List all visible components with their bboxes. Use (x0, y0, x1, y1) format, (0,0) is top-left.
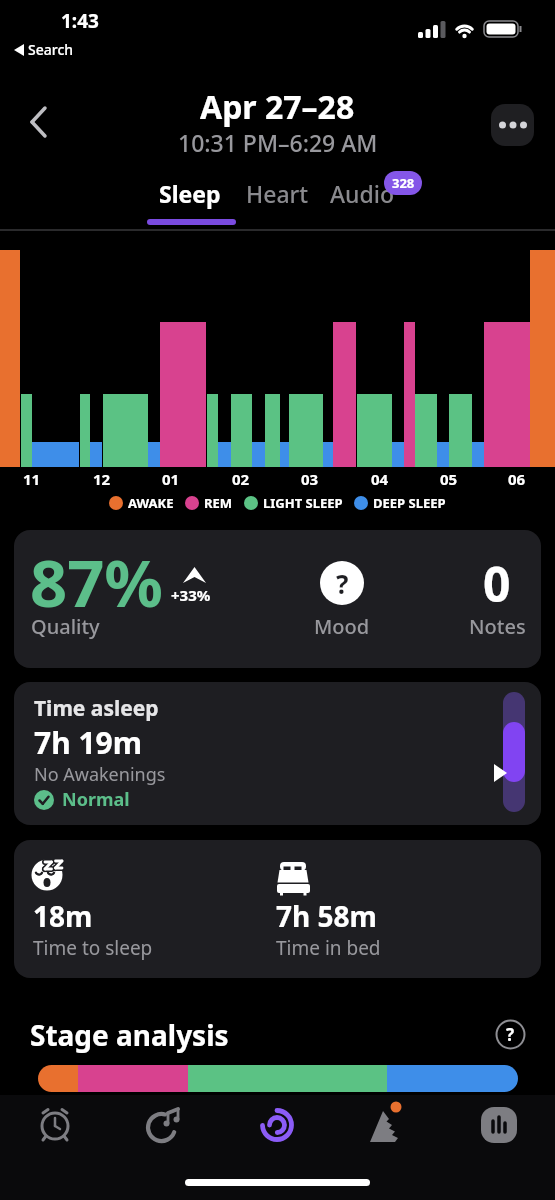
staticText: 06 (508, 469, 526, 489)
staticText: Normal (62, 787, 130, 812)
staticText: Time in bed (276, 935, 381, 961)
staticText: 04 (371, 469, 389, 489)
button[interactable] (16, 100, 60, 144)
button[interactable]: Audio (330, 178, 395, 209)
staticText: Time to sleep (33, 935, 153, 961)
staticText: No Awakenings (34, 762, 166, 787)
button[interactable] (366, 1103, 410, 1147)
button[interactable]: ? (320, 561, 364, 605)
button[interactable] (491, 104, 534, 146)
button[interactable]: Time asleep (14, 682, 541, 825)
button[interactable]: Sleep (159, 178, 221, 209)
staticText: Mood (314, 613, 370, 640)
staticText: 12 (93, 469, 111, 489)
staticText: Quality (31, 613, 100, 640)
staticText: 02 (232, 469, 250, 489)
staticText: 03 (301, 469, 319, 489)
button[interactable] (255, 1103, 299, 1147)
button[interactable] (477, 1103, 521, 1147)
staticText: REM (204, 494, 233, 512)
staticText: ? (506, 1023, 515, 1046)
staticText: 328 (392, 174, 415, 192)
button[interactable]: ? (495, 1019, 526, 1050)
staticText: 1:43 (61, 8, 99, 34)
staticText: Apr 27–28 (200, 85, 355, 129)
staticText: Audio (330, 178, 395, 209)
staticText: 01 (162, 469, 180, 489)
staticText: 10:31 PM–6:29 AM (178, 127, 378, 158)
button[interactable] (144, 1103, 188, 1147)
button[interactable]: Heart (246, 178, 309, 209)
staticText: Search (28, 40, 74, 59)
staticText: Heart (246, 178, 309, 209)
staticText: Sleep (159, 178, 221, 209)
staticText: AWAKE (128, 494, 174, 512)
staticText: 7h 58m (276, 897, 377, 935)
staticText: 7h 19m (34, 722, 143, 763)
staticText: 87% (30, 538, 163, 627)
staticText: +33% (171, 585, 211, 605)
staticText: 0 (483, 551, 511, 616)
staticText: Stage analysis (30, 1016, 229, 1054)
staticText: Notes (469, 613, 526, 640)
staticText: ? (336, 566, 349, 601)
staticText: 05 (440, 469, 458, 489)
staticText: LIGHT SLEEP (263, 494, 343, 512)
staticText: 18m (33, 897, 93, 935)
staticText: Time asleep (34, 694, 159, 723)
staticText: 11 (23, 469, 41, 489)
button[interactable] (33, 1103, 77, 1147)
staticText: DEEP SLEEP (373, 494, 446, 512)
